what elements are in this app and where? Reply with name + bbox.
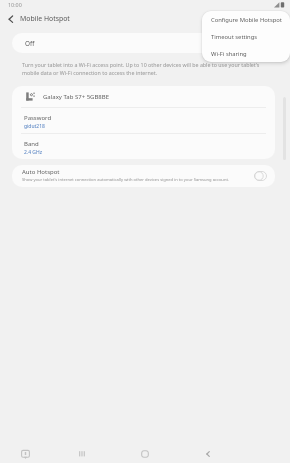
staticText: Mobile Hotspot <box>20 14 70 23</box>
button[interactable]: Back <box>194 441 222 463</box>
button[interactable]: Recent apps <box>68 441 96 463</box>
button[interactable]: Home <box>131 441 159 463</box>
button[interactable]: Auto Hotspot <box>12 165 275 187</box>
staticText: Galaxy Tab S7+ 5GB8BE <box>43 93 110 101</box>
button[interactable]: Hide keyboard <box>11 441 39 463</box>
button[interactable]: Off <box>12 33 275 53</box>
staticText: Turn your tablet into a Wi-Fi access poi… <box>22 61 262 76</box>
staticText: gidut218 <box>24 123 45 130</box>
staticText: 10:00 <box>8 1 22 8</box>
staticText: Off <box>25 39 35 48</box>
staticText: Configure Mobile Hotspot <box>211 16 282 24</box>
staticText: 2.4 GHz <box>24 149 43 156</box>
button[interactable]: Navigate up <box>3 11 19 27</box>
button[interactable]: Wi-Fi sharing <box>202 45 290 62</box>
staticText: Timeout settings <box>211 33 258 41</box>
button[interactable]: Auto Hotspot switch <box>251 169 269 183</box>
button[interactable]: Password <box>12 108 275 133</box>
staticText: Auto Hotspot <box>22 168 60 176</box>
staticText: Wi-Fi sharing <box>211 50 247 58</box>
button[interactable]: Timeout settings <box>202 28 290 45</box>
button[interactable]: Band <box>12 134 275 159</box>
staticText: Band <box>24 140 39 148</box>
staticText: Password <box>24 114 52 122</box>
button[interactable]: Configure Mobile Hotspot <box>202 11 290 28</box>
staticText: Show your tablet's internet connection a… <box>22 177 229 183</box>
button[interactable]: Galaxy Tab S7+ 5GB8BE <box>12 86 275 107</box>
